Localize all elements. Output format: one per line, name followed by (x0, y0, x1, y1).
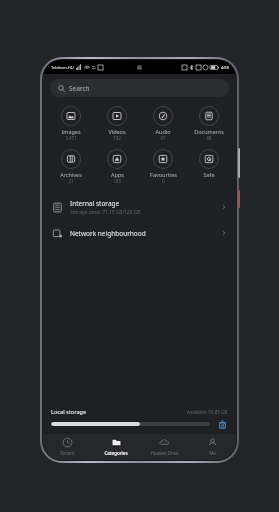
button[interactable]: Safe (186, 147, 232, 185)
button[interactable]: Categories (92, 434, 140, 460)
button[interactable]: Clean up storage (216, 418, 228, 430)
staticText: Audio (155, 128, 171, 135)
staticText: 97 (160, 135, 166, 141)
staticText: Archives (60, 171, 82, 178)
button[interactable]: Network neighbourhood (43, 220, 236, 246)
staticText: Available: 56.85 GB (187, 409, 228, 415)
staticText: Internal storage (70, 199, 120, 208)
staticText: 4G B/s (92, 64, 96, 70)
staticText: Documents (194, 128, 224, 135)
staticText: Huawei Drive (150, 450, 179, 456)
button[interactable]: Favourites (140, 147, 186, 186)
button[interactable]: Recent (43, 434, 92, 460)
button[interactable]: Huawei Drive (140, 434, 188, 460)
staticText: Local storage (51, 408, 87, 415)
staticText: Me (209, 450, 216, 456)
staticText: 0 (162, 178, 165, 184)
staticText: Videos (108, 128, 126, 135)
staticText: Telekom.HU (51, 65, 74, 70)
staticText: 163 (113, 178, 121, 184)
staticText: Favourites (150, 171, 177, 178)
button[interactable]: Videos (94, 104, 140, 143)
staticText: 3,471 (65, 135, 77, 141)
button[interactable]: Documents (186, 104, 232, 143)
staticText: 68 (206, 135, 212, 141)
button[interactable]: Search (50, 79, 229, 97)
staticText: 192 (113, 135, 121, 141)
staticText: 4:55 (221, 65, 229, 70)
button[interactable]: Images (47, 104, 94, 143)
button[interactable]: Archives (47, 147, 94, 186)
staticText: Recent (60, 450, 75, 456)
staticText: 21 (68, 178, 74, 184)
staticText: Network neighbourhood (70, 229, 146, 238)
button[interactable]: Apps (94, 147, 140, 186)
staticText: Categories (104, 450, 128, 456)
staticText: Apps (111, 171, 124, 178)
staticText: Search (69, 84, 90, 93)
staticText: Images (61, 128, 81, 135)
button[interactable]: Internal storage (43, 194, 236, 220)
button[interactable]: Audio (140, 104, 186, 143)
staticText: Safe (203, 171, 215, 178)
button[interactable]: Me (188, 434, 236, 460)
staticText: Storage used: 71.15 GB/128 GB (70, 209, 141, 216)
